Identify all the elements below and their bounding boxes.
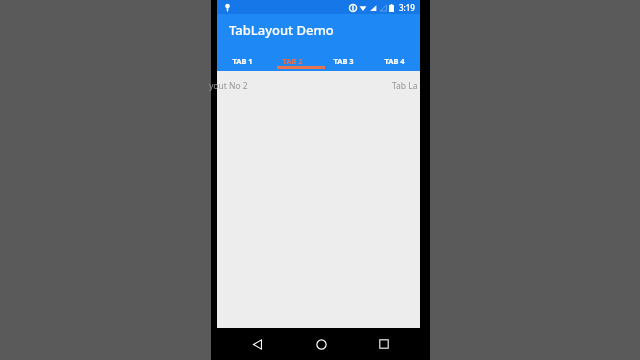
- button[interactable]: TAB 3: [318, 45, 369, 71]
- staticText: Tab La: [392, 80, 418, 92]
- staticText: 3:19: [399, 2, 415, 13]
- button[interactable]: TAB 2: [267, 45, 318, 71]
- button[interactable]: Back: [240, 328, 274, 360]
- staticText: TAB 3: [333, 56, 354, 66]
- button[interactable]: Home: [304, 328, 338, 360]
- staticText: TAB 2: [282, 56, 303, 66]
- button[interactable]: Recent apps: [367, 328, 401, 360]
- staticText: TAB 4: [384, 56, 405, 66]
- button[interactable]: TAB 4: [369, 45, 420, 71]
- button[interactable]: TAB 1: [217, 45, 267, 71]
- staticText: TAB 1: [232, 56, 253, 66]
- staticText: TabLayout Demo: [229, 21, 334, 39]
- staticText: yout No 2: [209, 80, 248, 92]
